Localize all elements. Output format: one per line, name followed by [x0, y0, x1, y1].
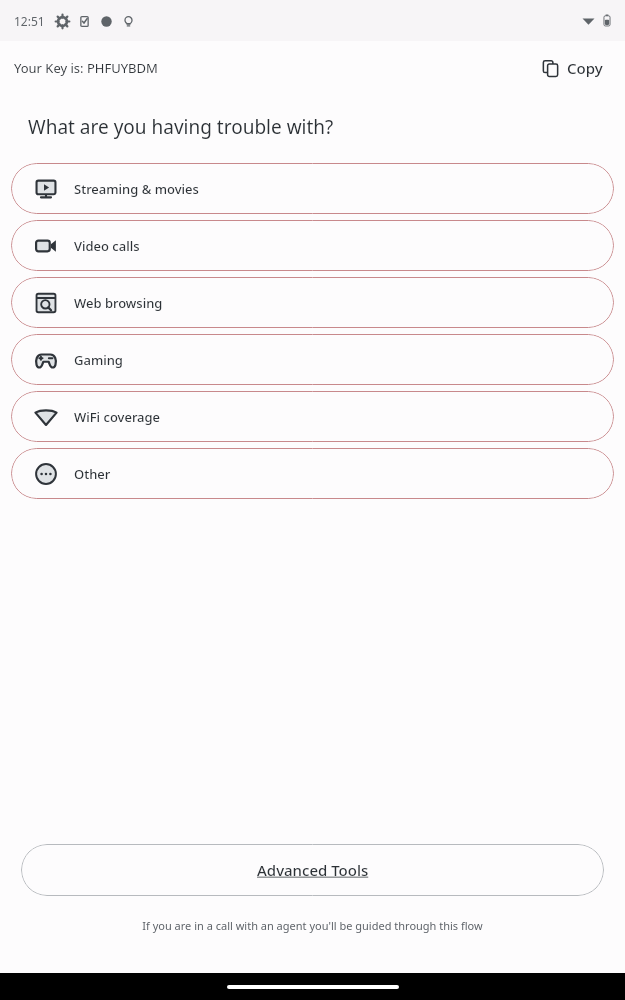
staticText: If you are in a call with an agent you'l… — [0, 918, 625, 933]
button[interactable]: Copy — [538, 54, 607, 82]
button[interactable]: Advanced Tools — [21, 844, 604, 896]
staticText: Other — [74, 465, 111, 483]
button[interactable]: Web browsing — [11, 277, 614, 328]
staticText: Copy — [567, 58, 603, 78]
button[interactable]: Streaming & movies — [11, 163, 614, 214]
staticText: Video calls — [74, 237, 140, 255]
button[interactable]: Video calls — [11, 220, 614, 271]
staticText: WiFi coverage — [74, 408, 161, 426]
staticText: Advanced Tools — [257, 860, 369, 880]
button[interactable]: WiFi coverage — [11, 391, 614, 442]
button[interactable]: Other — [11, 448, 614, 499]
button[interactable]: Gaming — [11, 334, 614, 385]
staticText: Web browsing — [74, 294, 163, 312]
staticText: Your Key is: PHFUYBDM — [14, 59, 158, 77]
staticText: Streaming & movies — [74, 180, 199, 198]
staticText: Gaming — [74, 351, 123, 369]
staticText: 12:51 — [14, 13, 45, 29]
staticText: What are you having trouble with? — [28, 114, 334, 140]
